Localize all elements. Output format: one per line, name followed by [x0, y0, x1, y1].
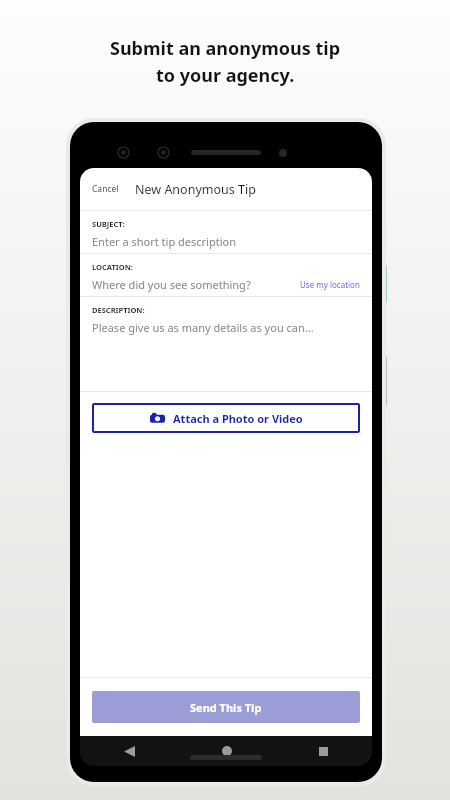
button[interactable]: Home	[178, 736, 275, 766]
button[interactable]: Cancel	[80, 177, 127, 201]
button[interactable]: SUBJECT:	[80, 211, 372, 253]
staticText: LOCATION:	[92, 262, 133, 272]
button[interactable]: Back	[80, 736, 178, 766]
button[interactable]: Recents	[275, 736, 372, 766]
staticText: Please give us as many details as you ca…	[92, 320, 314, 335]
staticText: DESCRIPTION:	[92, 305, 145, 315]
button[interactable]: LOCATION:	[80, 254, 372, 296]
staticText: Use my location	[300, 279, 360, 290]
button[interactable]: DESCRIPTION:	[80, 297, 372, 391]
staticText: New Anonymous Tip	[135, 181, 256, 198]
button[interactable]: Send This Tip	[92, 691, 360, 723]
staticText: Submit an anonymous tip	[110, 36, 341, 61]
staticText: SUBJECT:	[92, 219, 125, 229]
staticText: Attach a Photo or Video	[173, 411, 303, 426]
button[interactable]: Camera	[92, 403, 360, 433]
staticText: Send This Tip	[190, 700, 262, 715]
staticText: Cancel	[92, 183, 119, 195]
staticText: Enter a short tip description	[92, 234, 236, 249]
staticText: Where did you see something?	[92, 277, 251, 292]
other: Camera	[150, 412, 165, 424]
button[interactable]: Use my location	[300, 279, 360, 290]
staticText: to your agency.	[156, 63, 295, 88]
